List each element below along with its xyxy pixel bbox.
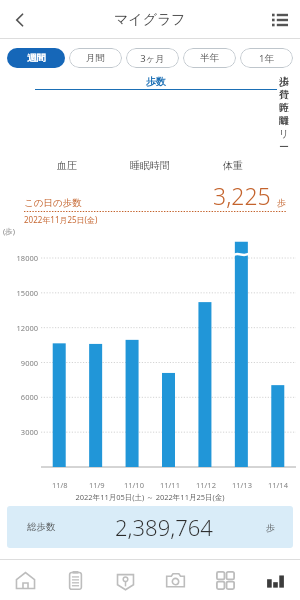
staticText: 1年 (259, 52, 274, 65)
staticText: 2,389,764 (115, 512, 213, 542)
staticText: 3000 (0, 427, 38, 437)
staticText: マイグラフ (114, 11, 186, 29)
button[interactable]: Graph (250, 560, 300, 600)
staticText: 2022年11月05日(土) ～ 2022年11月25日(金) (0, 492, 300, 502)
button[interactable]: 月間 (69, 48, 122, 68)
staticText: 11/14 (268, 480, 288, 490)
staticText: 11/8 (52, 480, 68, 490)
staticText: 睡眠時間 (130, 159, 170, 172)
button[interactable]: 歩数 (34, 75, 278, 90)
button[interactable]: 体重 (222, 159, 244, 174)
button[interactable]: 半年 (183, 48, 236, 68)
button[interactable]: Map (100, 560, 150, 600)
staticText: 11/12 (196, 480, 216, 490)
button[interactable]: 3ヶ月 (126, 48, 179, 68)
button[interactable]: 血圧 (56, 159, 78, 174)
staticText: 半年 (200, 52, 219, 64)
staticText: 歩数 (146, 75, 166, 88)
staticText: 体重 (223, 159, 243, 172)
button[interactable]: Camera (150, 560, 200, 600)
staticText: 9000 (0, 358, 38, 368)
staticText: 歩 (277, 197, 286, 208)
button[interactable]: 総歩数 (7, 506, 293, 548)
button[interactable]: Back (0, 0, 40, 39)
staticText: 11/13 (232, 480, 252, 490)
button[interactable]: Home (0, 560, 50, 600)
staticText: 2022年11月25日(金) (24, 214, 98, 225)
staticText: 6000 (0, 392, 38, 402)
staticText: (歩) (3, 226, 15, 236)
staticText: 月間 (86, 52, 105, 64)
staticText: 3ヶ月 (140, 52, 165, 65)
staticText: 12000 (0, 323, 38, 333)
staticText: 週間 (27, 52, 46, 64)
staticText: 11/9 (89, 480, 105, 490)
button[interactable]: Apps (200, 560, 250, 600)
button[interactable]: Records (50, 560, 100, 600)
staticText: 歩 (266, 522, 275, 533)
staticText: 総歩数 (27, 521, 56, 533)
staticText: この日の歩数 (24, 197, 82, 209)
staticText: 11/11 (160, 480, 180, 490)
button[interactable]: 週間 (7, 48, 65, 68)
button[interactable]: 1年 (240, 48, 293, 68)
staticText: 3,225 (213, 180, 271, 211)
staticText: 18000 (0, 253, 38, 263)
staticText: 血圧 (57, 159, 77, 172)
staticText: 11/10 (124, 480, 144, 490)
button[interactable]: Menu list (260, 0, 300, 39)
button[interactable]: 睡眠時間 (129, 159, 171, 174)
staticText: 15000 (0, 288, 38, 298)
